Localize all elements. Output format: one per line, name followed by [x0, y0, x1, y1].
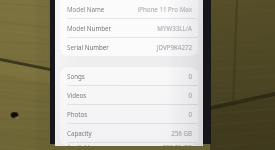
staticText: Capacity [67, 129, 92, 137]
staticText: 0 [188, 72, 192, 80]
button[interactable]: Capacity [60, 124, 198, 143]
staticText: Photos [67, 110, 88, 118]
staticText: 256 GB [171, 129, 192, 137]
staticText: Model Name [67, 5, 105, 13]
staticText: 239.71 GB [162, 143, 192, 146]
button[interactable]: Photos [60, 105, 198, 124]
button[interactable]: Songs [60, 67, 198, 86]
button[interactable]: Model Number [60, 19, 198, 38]
button[interactable]: Serial Number [60, 38, 198, 56]
staticText: 0 [188, 91, 192, 99]
staticText: JDVP9K4272 [156, 43, 192, 51]
staticText: 0 [188, 110, 192, 118]
staticText: MYW33LL/A [157, 24, 192, 32]
button[interactable]: Model Name [60, 0, 198, 19]
staticText: Videos [67, 91, 87, 99]
button[interactable]: Available [60, 143, 198, 146]
staticText: Serial Number [67, 43, 109, 51]
staticText: Model Number [67, 24, 112, 32]
staticText: Available [67, 143, 94, 146]
staticText: iPhone 11 Pro Max [137, 5, 192, 13]
button[interactable]: Videos [60, 86, 198, 105]
staticText: Songs [67, 72, 85, 80]
